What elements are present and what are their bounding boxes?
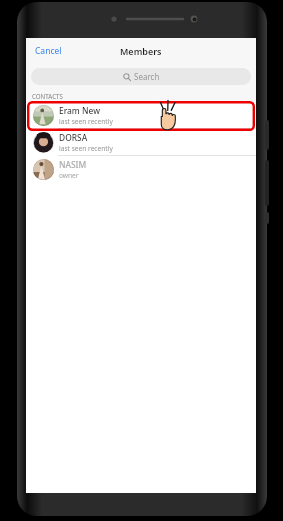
- button[interactable]: Search: [31, 68, 251, 85]
- staticText: Members: [120, 45, 162, 57]
- staticText: owner: [59, 171, 79, 180]
- staticText: Eram New: [59, 105, 100, 116]
- staticText: last seen recently: [59, 144, 113, 153]
- staticText: DORSA: [59, 132, 88, 143]
- staticText: Cancel: [35, 45, 62, 57]
- staticText: NASIM: [59, 159, 87, 170]
- other: Tap here: [154, 102, 180, 130]
- button[interactable]: DORSA: [26, 129, 256, 155]
- button[interactable]: NASIM: [26, 156, 256, 182]
- staticText: last seen recently: [59, 117, 113, 126]
- button[interactable]: Cancel: [30, 41, 67, 61]
- button[interactable]: Eram New: [26, 102, 256, 128]
- staticText: Search: [134, 71, 160, 82]
- staticText: CONTACTS: [32, 92, 63, 100]
